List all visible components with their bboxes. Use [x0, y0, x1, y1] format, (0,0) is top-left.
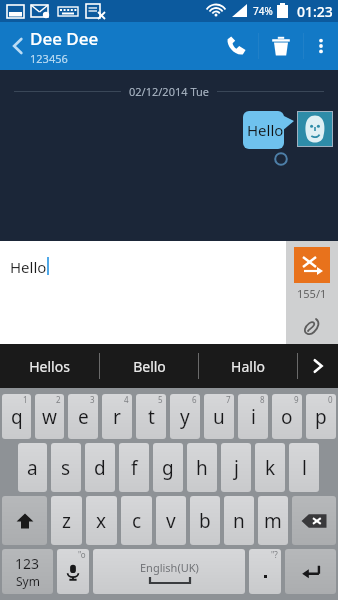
button[interactable]: Delete	[259, 24, 303, 68]
staticText: Dee Dee	[30, 27, 99, 50]
staticText: 74%	[253, 4, 273, 18]
staticText: v	[166, 508, 176, 534]
button[interactable]: r	[102, 394, 132, 439]
staticText: w	[42, 404, 57, 430]
staticText: 8	[260, 394, 265, 405]
button[interactable]: c	[121, 496, 152, 545]
staticText: p	[315, 404, 327, 430]
staticText: Hello	[247, 120, 284, 140]
button[interactable]: x	[86, 496, 117, 545]
button[interactable]: d	[85, 443, 115, 492]
other: Shift	[2, 496, 47, 545]
button[interactable]: a	[18, 443, 47, 492]
staticText: n	[233, 508, 245, 534]
button[interactable]: m	[258, 496, 288, 545]
staticText: c	[132, 508, 142, 534]
button[interactable]: Bello	[100, 344, 198, 388]
staticText: x	[96, 508, 107, 534]
staticText: b	[199, 508, 211, 534]
staticText: 0	[328, 394, 333, 405]
other: Voice input	[57, 549, 89, 594]
staticText: 2	[56, 394, 61, 405]
staticText: 02/12/2014 Tue	[129, 84, 209, 99]
button[interactable]: Shift	[2, 496, 47, 545]
button[interactable]: v	[156, 496, 186, 545]
button[interactable]: i	[238, 394, 268, 439]
other: Enter	[285, 549, 336, 594]
button[interactable]: p	[306, 394, 336, 439]
staticText: k	[265, 455, 276, 481]
button[interactable]: Hellos	[0, 344, 99, 388]
button[interactable]: n	[224, 496, 254, 545]
button[interactable]: More options	[304, 29, 338, 63]
staticText: s	[61, 455, 71, 481]
button[interactable]: Send message	[294, 247, 330, 283]
button[interactable]: 123	[2, 549, 53, 594]
staticText: j	[234, 455, 239, 481]
staticText: 155/1	[297, 286, 327, 301]
button[interactable]: Space	[93, 549, 245, 594]
staticText: u	[213, 404, 225, 430]
button[interactable]: k	[255, 443, 285, 492]
button[interactable]: f	[119, 443, 149, 492]
button[interactable]: Attach	[296, 310, 328, 342]
staticText: Bello	[133, 357, 166, 376]
staticText: o	[281, 404, 293, 430]
staticText: l	[302, 455, 307, 481]
staticText: 01:23	[297, 2, 333, 21]
staticText: h	[196, 455, 208, 481]
staticText: 123	[15, 554, 40, 573]
staticText: d	[94, 455, 106, 481]
button[interactable]: Call	[214, 24, 258, 68]
button[interactable]: w	[35, 394, 64, 439]
button[interactable]: More suggestions	[298, 344, 338, 388]
staticText: Hellos	[29, 357, 70, 376]
button[interactable]: y	[170, 394, 200, 439]
button[interactable]: t	[136, 394, 166, 439]
other: Delete	[292, 496, 336, 545]
button[interactable]: q	[2, 394, 31, 439]
staticText: r	[113, 404, 121, 430]
staticText: English(UK)	[140, 560, 199, 575]
staticText: Hello	[10, 257, 47, 277]
button[interactable]: j	[221, 443, 251, 492]
staticText: y	[180, 404, 190, 430]
staticText: 3	[90, 394, 95, 405]
other: Space	[93, 549, 245, 594]
staticText: 1	[23, 394, 28, 405]
staticText: 4	[124, 394, 129, 405]
button[interactable]: b	[190, 496, 220, 545]
staticText: 6	[192, 394, 197, 405]
staticText: e	[78, 404, 89, 430]
button[interactable]: h	[187, 443, 217, 492]
button[interactable]: e	[68, 394, 98, 439]
button[interactable]: Back	[4, 30, 32, 62]
staticText: "?	[271, 549, 278, 560]
staticText: a	[27, 455, 38, 481]
button[interactable]: Hello	[243, 111, 294, 149]
button[interactable]: Hallo	[199, 344, 297, 388]
staticText: i	[251, 404, 256, 430]
button[interactable]: g	[153, 443, 183, 492]
staticText: g	[162, 455, 174, 481]
staticText: Hallo	[231, 357, 265, 376]
button[interactable]: z	[51, 496, 82, 545]
staticText: 123456	[30, 51, 68, 66]
staticText: f	[131, 455, 138, 481]
staticText: 9	[294, 394, 299, 405]
staticText: q	[11, 404, 23, 430]
button[interactable]: Hello	[0, 241, 286, 344]
staticText: z	[62, 508, 71, 534]
staticText: m	[264, 508, 282, 534]
staticText: 5	[158, 394, 163, 405]
button[interactable]: Voice input	[57, 549, 89, 594]
button[interactable]: s	[51, 443, 81, 492]
button[interactable]: Delete	[292, 496, 336, 545]
button[interactable]: u	[204, 394, 234, 439]
button[interactable]: o	[272, 394, 302, 439]
button[interactable]: l	[289, 443, 319, 492]
staticText: "o	[78, 549, 86, 560]
button[interactable]: "?	[249, 549, 281, 594]
button[interactable]: Enter	[285, 549, 336, 594]
staticText: 7	[226, 394, 231, 405]
